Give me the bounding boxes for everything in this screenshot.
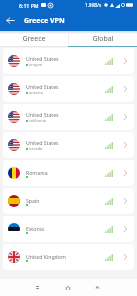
button[interactable]: Estonia (3, 216, 134, 242)
button[interactable]: United States (3, 76, 134, 102)
staticText: United States (26, 111, 59, 118)
staticText: oregon (29, 62, 43, 67)
staticText: United States (26, 139, 59, 146)
staticText: arizona (29, 90, 43, 95)
staticText: Estonia (26, 225, 44, 232)
staticText: Global (92, 34, 114, 44)
staticText: Spain (26, 197, 40, 204)
button[interactable]: United States (3, 104, 134, 130)
button[interactable]: United States (3, 48, 134, 74)
staticText: United Kingdom (26, 253, 66, 260)
button[interactable]: Greece (0, 31, 68, 47)
staticText: Greece VPN (24, 16, 65, 26)
staticText: california (29, 118, 46, 123)
staticText: Greece (22, 34, 46, 44)
button[interactable]: Spain (3, 188, 134, 214)
button[interactable]: United States (3, 132, 134, 158)
staticText: nevada (29, 146, 43, 151)
button[interactable]: Back (90, 280, 105, 295)
button[interactable]: Back (0, 10, 21, 31)
button[interactable]: United Kingdom (3, 244, 134, 270)
button[interactable]: Home (60, 280, 75, 295)
button[interactable]: Global (68, 31, 137, 47)
staticText: United States (26, 55, 59, 62)
staticText: Romania (26, 169, 48, 176)
button[interactable]: Romania (3, 160, 134, 186)
staticText: United States (26, 83, 59, 90)
staticText: 6:11 PM (19, 2, 39, 9)
button[interactable]: Recents (30, 280, 45, 295)
staticText: 1.9KB/s (85, 2, 102, 8)
